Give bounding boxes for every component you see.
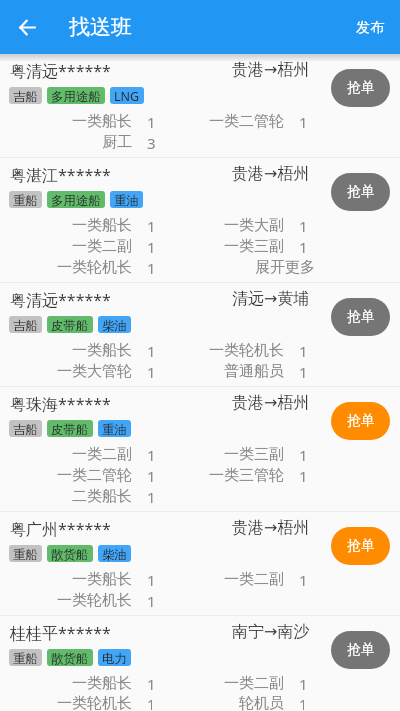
staticText: 一类大管轮 — [0, 362, 132, 381]
button[interactable]: 发布 — [340, 7, 400, 49]
staticText: 1 — [147, 487, 152, 507]
staticText: 1 — [299, 466, 304, 486]
button[interactable]: 粤珠海****** — [0, 387, 400, 511]
staticText: 柴油 — [102, 547, 127, 562]
staticText: 抢单 — [347, 412, 375, 430]
button[interactable]: Back — [10, 10, 44, 44]
staticText: 3 — [147, 133, 152, 153]
staticText: 粤清远****** — [10, 289, 111, 311]
button[interactable]: 粤广州****** — [0, 512, 400, 615]
staticText: 一类二副 — [152, 674, 284, 693]
staticText: 桂桂平****** — [10, 622, 111, 644]
staticText: 一类二管轮 — [0, 466, 132, 485]
staticText: 散货船 — [51, 651, 89, 666]
staticText: 二类船长 — [0, 487, 132, 506]
staticText: 柴油 — [102, 318, 127, 333]
staticText: 皮带船 — [51, 318, 89, 333]
staticText: 1 — [147, 216, 152, 236]
staticText: 一类轮机长 — [0, 258, 132, 277]
staticText: 1 — [299, 237, 304, 257]
button[interactable]: 桂桂平****** — [0, 616, 400, 711]
staticText: 1 — [147, 445, 152, 465]
staticText: 1 — [299, 216, 304, 236]
button[interactable]: 抢单 — [331, 527, 390, 565]
button[interactable]: 抢单 — [331, 69, 390, 107]
staticText: 普通船员 — [152, 362, 284, 381]
staticText: 重油 — [114, 193, 139, 208]
button[interactable]: 抢单 — [331, 631, 390, 669]
staticText: 清远→黄埔 — [232, 289, 310, 309]
staticText: 皮带船 — [51, 422, 89, 437]
staticText: 一类船长 — [0, 216, 132, 235]
staticText: 一类船长 — [0, 341, 132, 360]
staticText: 1 — [147, 570, 152, 590]
staticText: 厨工 — [0, 133, 132, 152]
staticText: 轮机员 — [152, 694, 284, 711]
staticText: 1 — [147, 694, 152, 711]
staticText: 1 — [299, 362, 304, 382]
button[interactable]: 抢单 — [331, 173, 390, 211]
staticText: 贵港→梧州 — [232, 393, 310, 413]
staticText: 1 — [147, 237, 152, 257]
staticText: 吉船 — [13, 89, 38, 104]
staticText: 一类二管轮 — [152, 112, 284, 131]
staticText: 电力 — [102, 651, 127, 666]
staticText: 粤清远****** — [10, 60, 111, 82]
staticText: 找送班 — [69, 14, 132, 40]
staticText: 抢单 — [347, 79, 375, 97]
staticText: 展开更多 — [255, 258, 315, 277]
staticText: 粤广州****** — [10, 518, 111, 540]
staticText: 散货船 — [51, 547, 89, 562]
button[interactable]: 粤清远****** — [0, 54, 400, 157]
staticText: 1 — [147, 112, 152, 132]
staticText: LNG — [114, 88, 140, 104]
staticText: 一类三副 — [152, 237, 284, 256]
staticText: 抢单 — [347, 308, 375, 326]
staticText: 1 — [147, 341, 152, 361]
staticText: 一类船长 — [0, 674, 132, 693]
staticText: 一类船长 — [0, 112, 132, 131]
staticText: 1 — [147, 466, 152, 486]
staticText: 一类二副 — [0, 445, 132, 464]
staticText: 重船 — [13, 193, 38, 208]
staticText: 抢单 — [347, 537, 375, 555]
button[interactable]: 粤湛江****** — [0, 158, 400, 282]
staticText: 一类三副 — [152, 445, 284, 464]
staticText: 1 — [299, 570, 304, 590]
staticText: 重船 — [13, 651, 38, 666]
staticText: 一类二副 — [152, 570, 284, 589]
staticText: 贵港→梧州 — [232, 518, 310, 538]
staticText: 发布 — [356, 19, 384, 37]
staticText: 1 — [299, 674, 304, 694]
staticText: 1 — [299, 694, 304, 711]
staticText: 南宁→南沙 — [232, 622, 310, 642]
staticText: 抢单 — [347, 641, 375, 659]
staticText: 抢单 — [347, 183, 375, 201]
staticText: 一类二副 — [0, 237, 132, 256]
button[interactable]: 抢单 — [331, 402, 390, 440]
staticText: 多用途船 — [51, 193, 101, 208]
staticText: 1 — [147, 591, 152, 611]
staticText: 重油 — [102, 422, 127, 437]
staticText: 1 — [299, 112, 304, 132]
staticText: 一类轮机长 — [0, 694, 132, 711]
staticText: 粤珠海****** — [10, 393, 111, 415]
staticText: 一类轮机长 — [152, 341, 284, 360]
staticText: 一类轮机长 — [0, 591, 132, 610]
staticText: 1 — [147, 362, 152, 382]
staticText: 吉船 — [13, 318, 38, 333]
staticText: 1 — [299, 341, 304, 361]
button[interactable]: 粤清远****** — [0, 283, 400, 386]
staticText: 一类船长 — [0, 570, 132, 589]
staticText: 1 — [147, 258, 152, 278]
staticText: 1 — [299, 445, 304, 465]
staticText: 重船 — [13, 547, 38, 562]
staticText: 吉船 — [13, 422, 38, 437]
staticText: 多用途船 — [51, 89, 101, 104]
staticText: 一类三管轮 — [152, 466, 284, 485]
staticText: 1 — [147, 674, 152, 694]
button[interactable]: 抢单 — [331, 298, 390, 336]
staticText: 贵港→梧州 — [232, 164, 310, 184]
staticText: 一类大副 — [152, 216, 284, 235]
button[interactable]: 展开更多 — [255, 257, 315, 278]
